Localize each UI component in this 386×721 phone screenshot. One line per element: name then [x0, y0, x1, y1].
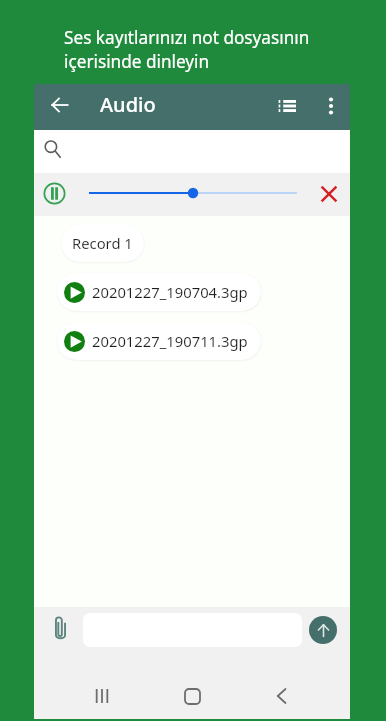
button[interactable]: 20201227_190704.3gp [57, 273, 261, 311]
staticText: 20201227_190711.3gp [92, 331, 248, 351]
button[interactable]: Close [314, 179, 344, 209]
button[interactable]: Attach [46, 614, 74, 642]
staticText: Record 1 [72, 233, 133, 253]
button[interactable]: Pause [38, 177, 70, 209]
staticText: Ses kayıtlarınızı not dosyasının içerisi… [64, 26, 310, 73]
button[interactable]: Back [260, 674, 304, 718]
button[interactable]: Home [170, 674, 214, 718]
staticText: 20201227_190704.3gp [92, 282, 248, 302]
button[interactable]: Back [37, 82, 83, 128]
staticText: Audio [100, 91, 156, 118]
button[interactable]: Record 1 [61, 224, 144, 262]
button[interactable]: More options [310, 85, 352, 127]
button[interactable]: 20201227_190711.3gp [57, 322, 261, 360]
button[interactable]: Recents [80, 674, 124, 718]
button[interactable]: Send [309, 616, 337, 644]
button[interactable]: Search [35, 131, 72, 168]
button[interactable]: List view [266, 85, 308, 127]
